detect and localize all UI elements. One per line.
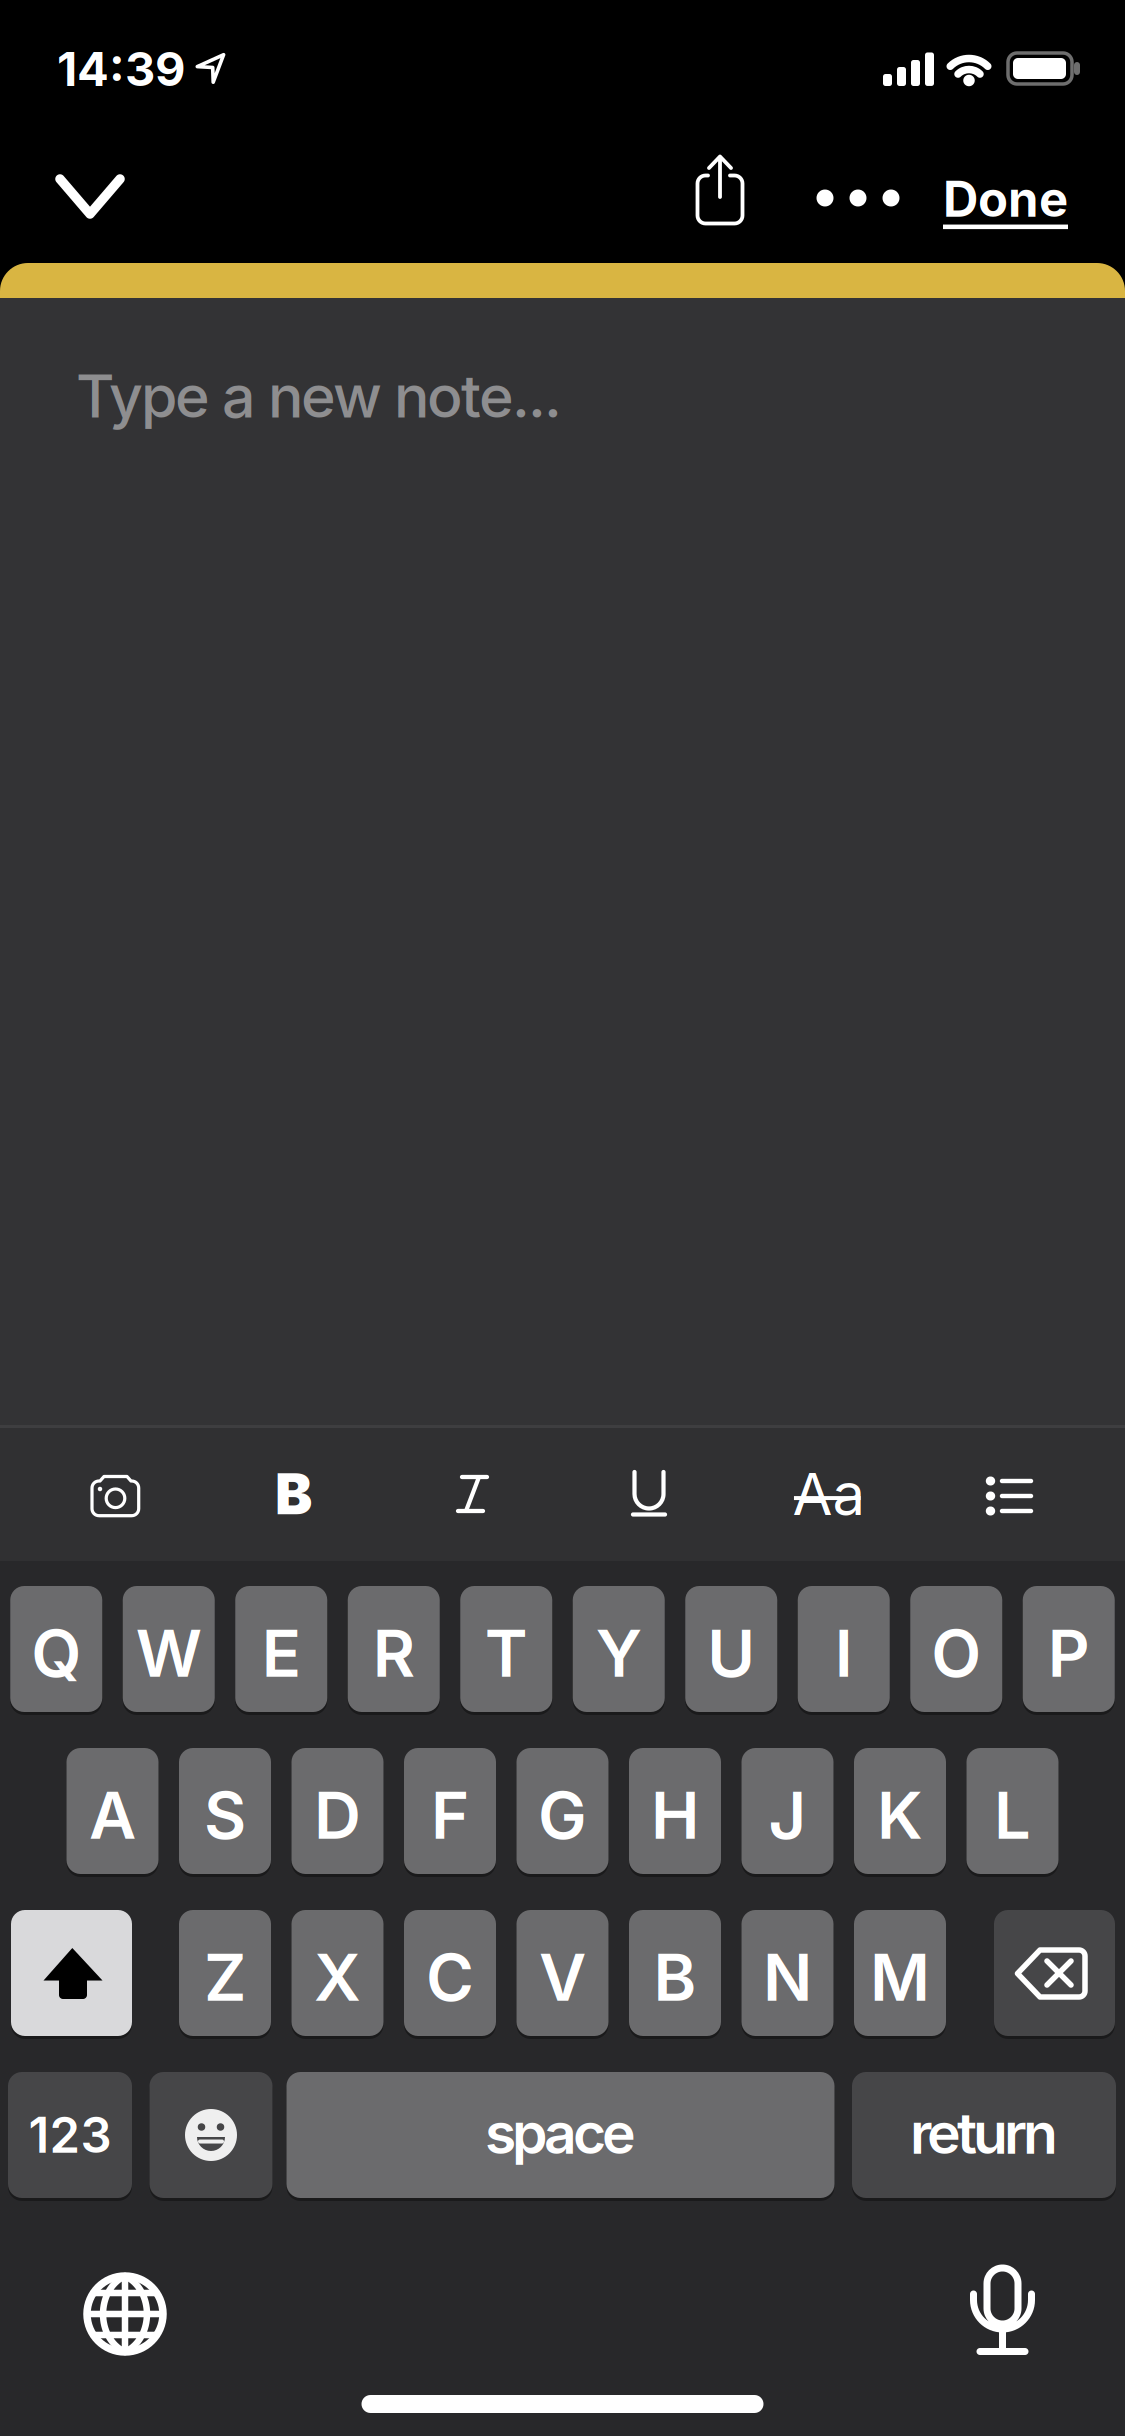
staticText: B (275, 1460, 312, 1528)
button[interactable]: Delete (994, 1910, 1115, 2036)
button[interactable]: C (404, 1910, 496, 2036)
staticText: C (426, 1938, 474, 2016)
staticText: L (994, 1776, 1031, 1854)
staticText: I (835, 1614, 853, 1692)
staticText: U (707, 1614, 755, 1692)
button[interactable]: L (966, 1748, 1058, 1874)
staticText: return (910, 2098, 1058, 2167)
button[interactable]: Shift (11, 1910, 132, 2036)
staticText: W (136, 1614, 202, 1692)
button[interactable]: G (516, 1748, 608, 1874)
staticText: P (1048, 1614, 1090, 1692)
staticText: G (538, 1776, 587, 1854)
button[interactable]: space (286, 2072, 834, 2198)
button[interactable]: Emoji (149, 2072, 272, 2198)
staticText: R (373, 1614, 415, 1692)
button[interactable]: H (629, 1748, 721, 1874)
staticText: H (651, 1776, 699, 1854)
button[interactable]: R (348, 1586, 440, 1712)
staticText: space (485, 2098, 636, 2167)
button[interactable]: P (1023, 1586, 1115, 1712)
button[interactable]: B (629, 1910, 721, 2036)
staticText: Q (31, 1614, 81, 1692)
button[interactable]: Z (179, 1910, 271, 2036)
staticText: B (653, 1938, 696, 2016)
button[interactable]: D (291, 1748, 383, 1874)
staticText: Y (596, 1614, 642, 1692)
staticText: N (763, 1938, 812, 2016)
button[interactable]: A (66, 1748, 158, 1874)
button[interactable]: F (404, 1748, 496, 1874)
button[interactable]: Insert photo (65, 1456, 165, 1536)
button[interactable]: List (972, 1465, 1042, 1525)
button[interactable]: Underline (610, 1459, 690, 1529)
staticText: Done (943, 169, 1068, 229)
button[interactable]: Strikethrough (774, 1449, 884, 1539)
button[interactable]: Y (573, 1586, 665, 1712)
button[interactable]: 123 (8, 2072, 132, 2198)
button[interactable]: Next keyboard (75, 2264, 175, 2364)
staticText: O (931, 1614, 981, 1692)
button[interactable]: M (854, 1910, 946, 2036)
staticText: Type a new note... (76, 360, 562, 432)
button[interactable]: X (291, 1910, 383, 2036)
button[interactable]: Share (670, 135, 770, 245)
button[interactable]: W (123, 1586, 215, 1712)
button[interactable]: Dictate (953, 2256, 1053, 2366)
staticText: F (431, 1776, 469, 1854)
button[interactable]: Done (768, 169, 1068, 229)
button[interactable]: Minimize (30, 152, 150, 242)
staticText: V (539, 1938, 586, 2016)
staticText: S (204, 1776, 246, 1854)
button[interactable]: J (741, 1748, 833, 1874)
staticText: Z (204, 1938, 246, 2016)
button[interactable]: return (852, 2072, 1116, 2198)
button[interactable]: I (798, 1586, 890, 1712)
staticText: X (314, 1938, 361, 2016)
button[interactable]: Q (10, 1586, 102, 1712)
staticText: 123 (28, 2105, 111, 2165)
staticText: J (768, 1776, 806, 1854)
button[interactable]: U (685, 1586, 777, 1712)
button[interactable]: More (803, 163, 913, 233)
staticText: Aa (792, 1459, 865, 1529)
staticText: 14:39 (57, 41, 186, 97)
button[interactable]: S (179, 1748, 271, 1874)
button[interactable]: K (854, 1748, 946, 1874)
button[interactable]: Bold (248, 1449, 338, 1539)
button[interactable]: E (235, 1586, 327, 1712)
button[interactable]: N (741, 1910, 833, 2036)
staticText: A (89, 1776, 136, 1854)
button[interactable]: V (516, 1910, 608, 2036)
button[interactable]: O (910, 1586, 1002, 1712)
staticText: T (485, 1614, 528, 1692)
button[interactable]: T (460, 1586, 552, 1712)
staticText: M (870, 1938, 930, 2016)
staticText: D (314, 1776, 361, 1854)
button[interactable]: Italic (437, 1459, 507, 1529)
staticText: K (877, 1776, 923, 1854)
staticText: E (262, 1614, 301, 1692)
